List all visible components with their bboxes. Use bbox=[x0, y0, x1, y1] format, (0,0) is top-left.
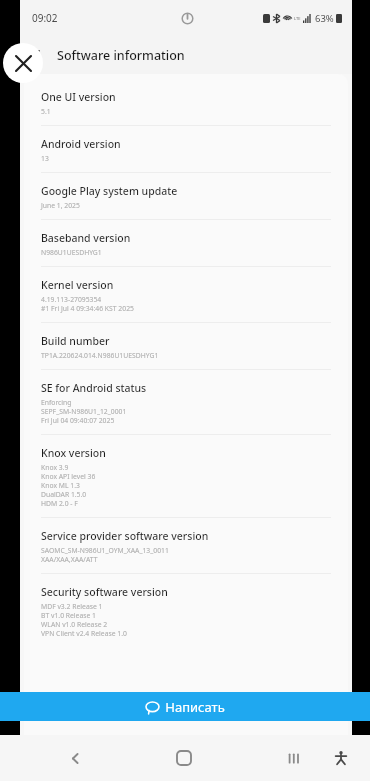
staticText: SAOMC_SM-N986U1_OYM_XAA_13_0011 bbox=[41, 546, 169, 555]
button[interactable]: Close bbox=[3, 43, 43, 83]
staticText: 5.1 bbox=[41, 107, 51, 116]
staticText: BT v1.0 Release 1 bbox=[41, 611, 96, 620]
button[interactable]: Baseband version bbox=[24, 220, 348, 266]
button[interactable]: Back bbox=[58, 741, 92, 775]
staticText: Security software version bbox=[41, 585, 168, 599]
staticText: XAA/XAA,XAA/ATT bbox=[41, 555, 98, 564]
button[interactable]: Accessibility bbox=[324, 741, 358, 775]
staticText: MDF v3.2 Release 1 bbox=[41, 602, 103, 611]
staticText: Google Play system update bbox=[41, 184, 178, 198]
staticText: Fri Jul 04 09:40:07 2025 bbox=[41, 416, 115, 425]
staticText: WLAN v1.0 Release 2 bbox=[41, 620, 108, 629]
staticText: VPN Client v2.4 Release 1.0 bbox=[41, 629, 127, 638]
button[interactable]: Google Play system update bbox=[24, 173, 348, 219]
staticText: #1 Fri Jul 4 09:34:46 KST 2025 bbox=[41, 304, 134, 313]
button[interactable]: Kernel version bbox=[24, 267, 348, 322]
button[interactable]: Service provider software version bbox=[24, 518, 348, 573]
button[interactable]: Написать bbox=[0, 692, 370, 721]
staticText: 13 bbox=[41, 154, 49, 163]
staticText: June 1, 2025 bbox=[41, 201, 80, 210]
staticText: Kernel version bbox=[41, 278, 114, 292]
staticText: Enforcing bbox=[41, 398, 72, 407]
staticText: LTE bbox=[294, 16, 301, 21]
staticText: DualDAR 1.5.0 bbox=[41, 490, 87, 499]
button[interactable]: Security software version bbox=[24, 574, 348, 647]
button[interactable]: Build number bbox=[24, 323, 348, 369]
staticText: One UI version bbox=[41, 90, 116, 104]
button[interactable]: One UI version bbox=[24, 79, 348, 125]
staticText: Knox version bbox=[41, 446, 106, 460]
staticText: Software information bbox=[57, 47, 185, 64]
staticText: SEPF_SM-N986U1_12_0001 bbox=[41, 407, 127, 416]
button[interactable]: Knox version bbox=[24, 435, 348, 517]
staticText: Android version bbox=[41, 137, 121, 151]
staticText: Build number bbox=[41, 334, 110, 348]
button[interactable]: SE for Android status bbox=[24, 370, 348, 434]
staticText: Knox ML 1.3 bbox=[41, 481, 80, 490]
staticText: 63% bbox=[315, 12, 334, 25]
staticText: SE for Android status bbox=[41, 381, 147, 395]
button[interactable]: Back bbox=[20, 38, 54, 72]
button[interactable]: Android version bbox=[24, 126, 348, 172]
button[interactable]: Home bbox=[167, 741, 201, 775]
staticText: HDM 2.0 - F bbox=[41, 499, 78, 508]
staticText: 09:02 bbox=[32, 11, 58, 25]
staticText: N986U1UESDHYG1 bbox=[41, 248, 102, 257]
staticText: Написать bbox=[165, 698, 225, 716]
staticText: Service provider software version bbox=[41, 529, 209, 543]
button[interactable]: Recent apps bbox=[276, 741, 310, 775]
staticText: Baseband version bbox=[41, 231, 131, 245]
staticText: Knox API level 36 bbox=[41, 472, 96, 481]
staticText: Knox 3.9 bbox=[41, 463, 69, 472]
staticText: TP1A.220624.014.N986U1UESDHYG1 bbox=[41, 351, 159, 360]
staticText: 4.19.113-27095354 bbox=[41, 295, 102, 304]
